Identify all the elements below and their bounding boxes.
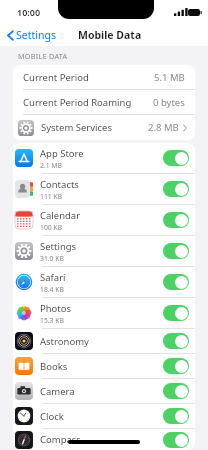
button[interactable]: Safari <box>13 267 195 297</box>
button[interactable]: Current Period Roaming <box>13 90 195 114</box>
button[interactable]: Mobile data toggle <box>163 333 189 349</box>
button[interactable]: Mobile data toggle <box>163 181 189 197</box>
staticText: Contacts <box>40 178 79 191</box>
staticText: Books <box>40 360 68 373</box>
button[interactable]: Mobile data toggle <box>163 383 189 399</box>
staticText: Photos <box>40 302 72 315</box>
staticText: 100 KB <box>40 223 63 232</box>
staticText: 111 KB <box>40 192 63 201</box>
staticText: 10:00 <box>17 6 41 18</box>
button[interactable]: Settings <box>5 26 58 44</box>
staticText: Current Period Roaming <box>23 96 132 109</box>
button[interactable]: Mobile data toggle <box>163 408 189 424</box>
button[interactable]: Camera <box>13 379 195 403</box>
button[interactable]: Photos <box>13 298 195 328</box>
button[interactable]: Mobile data toggle <box>163 212 189 228</box>
button[interactable]: App Store <box>13 143 195 173</box>
button[interactable]: Books <box>13 354 195 378</box>
button[interactable]: Calendar <box>13 205 195 235</box>
button[interactable]: System Services <box>13 115 195 140</box>
staticText: Mobile Data <box>78 28 142 42</box>
staticText: 0 bytes <box>153 96 185 109</box>
staticText: Camera <box>40 385 75 398</box>
staticText: MOBILE DATA <box>18 51 68 61</box>
button[interactable]: Clock <box>13 404 195 428</box>
button[interactable]: Mobile data toggle <box>163 432 189 448</box>
staticText: Settings <box>40 240 77 253</box>
staticText: Settings <box>16 28 56 42</box>
staticText: System Services <box>41 121 112 134</box>
staticText: 31.0 KB <box>40 254 64 263</box>
staticText: Safari <box>40 271 66 284</box>
staticText: App Store <box>40 147 84 160</box>
button[interactable]: Settings <box>13 236 195 266</box>
staticText: 18.4 KB <box>40 285 64 294</box>
staticText: 2.1 MB <box>40 161 62 170</box>
button[interactable]: Current Period <box>13 65 195 89</box>
staticText: 15.3 KB <box>40 316 64 325</box>
button[interactable]: Mobile data toggle <box>163 305 189 321</box>
staticText: 5.1 MB <box>154 71 185 84</box>
button[interactable]: Mobile data toggle <box>163 150 189 166</box>
staticText: Astronomy <box>40 335 89 348</box>
button[interactable]: Compass <box>13 429 195 450</box>
button[interactable]: Astronomy <box>13 329 195 353</box>
staticText: Current Period <box>23 71 89 84</box>
staticText: Clock <box>40 410 64 423</box>
button[interactable]: Contacts <box>13 174 195 204</box>
button[interactable]: Mobile data toggle <box>163 243 189 259</box>
button[interactable]: Mobile data toggle <box>163 274 189 290</box>
staticText: Calendar <box>40 209 81 222</box>
staticText: Compass <box>40 433 81 446</box>
staticText: 2.8 MB <box>148 121 179 134</box>
button[interactable]: Mobile data toggle <box>163 358 189 374</box>
